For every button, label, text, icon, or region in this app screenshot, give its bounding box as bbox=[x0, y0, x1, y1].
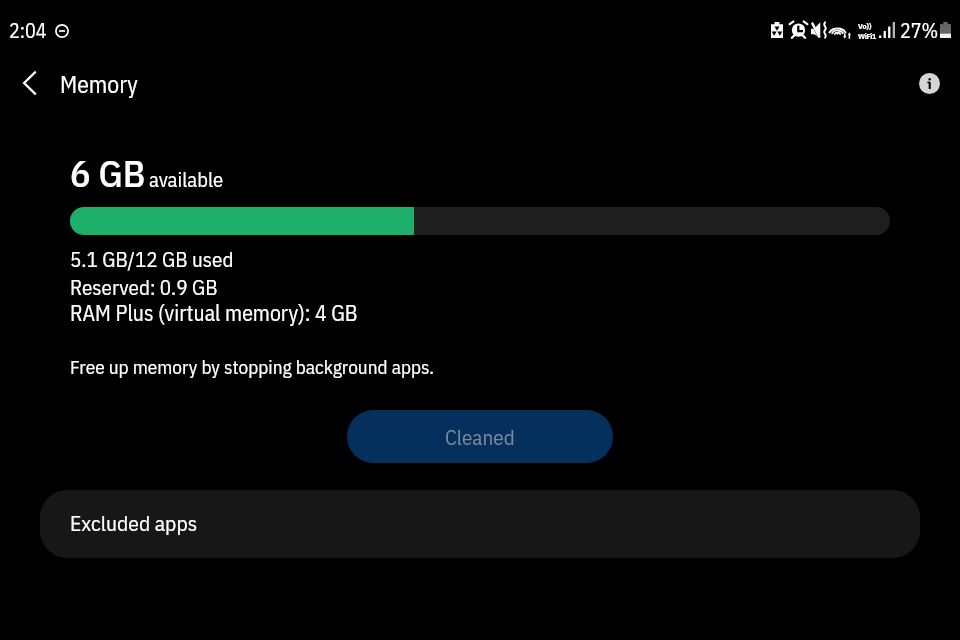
staticText: 27% bbox=[900, 17, 939, 43]
staticText: 2:04 bbox=[9, 17, 47, 43]
staticText: 5.1 GB/12 GB used bbox=[70, 245, 234, 272]
button[interactable]: Navigate up bbox=[6, 59, 54, 107]
button[interactable]: Cleaned bbox=[347, 410, 613, 463]
staticText: Reserved: 0.9 GB bbox=[70, 273, 218, 300]
staticText: RAM Plus (virtual memory): 4 GB bbox=[70, 299, 358, 327]
button[interactable]: Excluded apps bbox=[40, 490, 920, 558]
button[interactable]: Information bbox=[905, 59, 953, 107]
staticText: Free up memory by stopping background ap… bbox=[70, 354, 435, 379]
staticText: Vo)) bbox=[858, 21, 872, 31]
staticText: available bbox=[149, 166, 224, 193]
staticText: Excluded apps bbox=[70, 509, 198, 537]
staticText: 6 GB bbox=[70, 148, 146, 197]
staticText: WiFi1 bbox=[858, 31, 877, 41]
staticText: Memory bbox=[60, 69, 138, 100]
staticText: Cleaned bbox=[445, 423, 515, 450]
